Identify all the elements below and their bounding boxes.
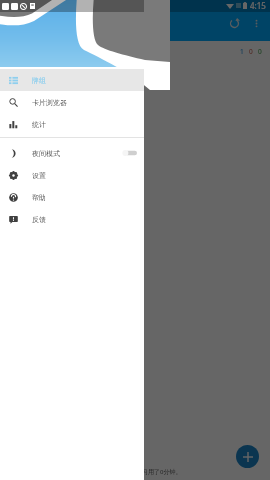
staticText: 设置: [32, 171, 46, 180]
staticText: 牌组: [32, 76, 46, 85]
button[interactable]: 统计: [0, 113, 144, 135]
staticText: 4:15: [250, 0, 266, 11]
button[interactable]: Sync: [223, 12, 245, 34]
button[interactable]: Default: [0, 41, 270, 62]
staticText: 0: [258, 47, 262, 56]
button[interactable]: 牌组: [0, 69, 144, 91]
button[interactable]: 夜间模式: [0, 142, 144, 164]
staticText: 今天学习用了0分钟。: [124, 468, 182, 476]
staticText: Default: [12, 47, 240, 57]
button[interactable]: Add deck: [236, 445, 259, 468]
staticText: 1: [240, 47, 244, 56]
button[interactable]: 卡片浏览器: [0, 91, 144, 113]
button[interactable]: 帮助: [0, 186, 144, 208]
staticText: 统计: [32, 120, 46, 129]
staticText: 夜间模式: [32, 149, 60, 158]
button[interactable]: 反馈: [0, 208, 144, 230]
staticText: 卡片浏览器: [32, 98, 67, 107]
staticText: 反馈: [32, 215, 46, 224]
staticText: 帮助: [32, 193, 46, 202]
button[interactable]: 设置: [0, 164, 144, 186]
staticText: 0: [249, 47, 253, 56]
button[interactable]: More options: [245, 12, 267, 34]
